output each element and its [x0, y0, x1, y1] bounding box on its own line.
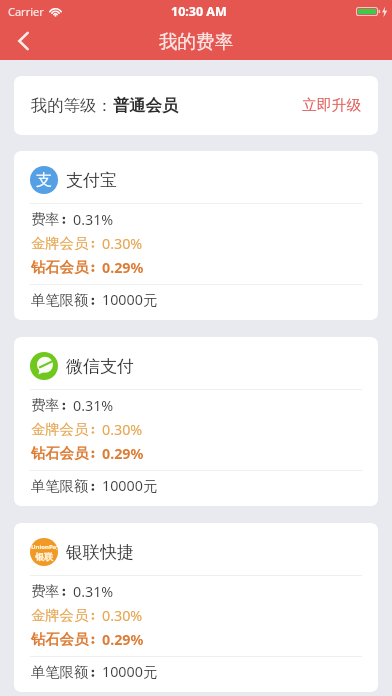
staticText: 0.30%: [102, 420, 143, 439]
staticText: 0.29%: [102, 630, 144, 649]
staticText: 银联: [35, 551, 53, 562]
staticText: 费率: [31, 396, 60, 414]
staticText: 10000元: [102, 290, 158, 310]
staticText: 单笔限额: [31, 477, 89, 495]
button[interactable]: UnionPay: [14, 523, 378, 692]
staticText: 10:30 AM: [171, 3, 227, 20]
staticText: 10000元: [102, 476, 158, 496]
staticText: 0.29%: [102, 258, 144, 277]
staticText: 0.31%: [73, 210, 114, 229]
staticText: 0.31%: [73, 582, 114, 601]
staticText: Carrier: [8, 4, 44, 19]
staticText: 银联快捷: [66, 542, 134, 563]
staticText: 立即升级: [302, 96, 362, 115]
staticText: UnionPay: [31, 543, 57, 551]
staticText: 费率: [31, 210, 60, 228]
staticText: 金牌会员: [31, 606, 89, 624]
staticText: 钻石会员: [31, 444, 89, 462]
staticText: 10000元: [102, 662, 158, 682]
staticText: 0.30%: [102, 234, 143, 253]
staticText: 我的费率: [159, 30, 233, 53]
staticText: 单笔限额: [31, 291, 89, 309]
staticText: 钻石会员: [31, 630, 89, 648]
staticText: 微信支付: [66, 356, 134, 377]
staticText: 普通会员: [113, 95, 179, 116]
staticText: 0.29%: [102, 444, 144, 463]
staticText: 金牌会员: [31, 420, 89, 438]
staticText: 0.31%: [73, 396, 114, 415]
staticText: 0.30%: [102, 606, 143, 625]
staticText: 支付宝: [66, 170, 117, 191]
staticText: 钻石会员: [31, 258, 89, 276]
staticText: 单笔限额: [31, 663, 89, 681]
button[interactable]: 我的等级：: [14, 76, 378, 135]
staticText: 我的等级：: [31, 95, 113, 116]
staticText: 金牌会员: [31, 234, 89, 252]
button[interactable]: Back: [0, 22, 46, 60]
button[interactable]: 微信支付: [14, 337, 378, 506]
staticText: 费率: [31, 582, 60, 600]
button[interactable]: 立即升级: [302, 96, 362, 115]
staticText: 支: [36, 170, 52, 190]
button[interactable]: 支: [14, 151, 378, 320]
